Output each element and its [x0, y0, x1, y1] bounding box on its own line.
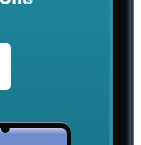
- button[interactable]: [0, 43, 11, 90]
- staticText: Ont: [0, 0, 30, 9]
- staticText: s: [25, 0, 34, 9]
